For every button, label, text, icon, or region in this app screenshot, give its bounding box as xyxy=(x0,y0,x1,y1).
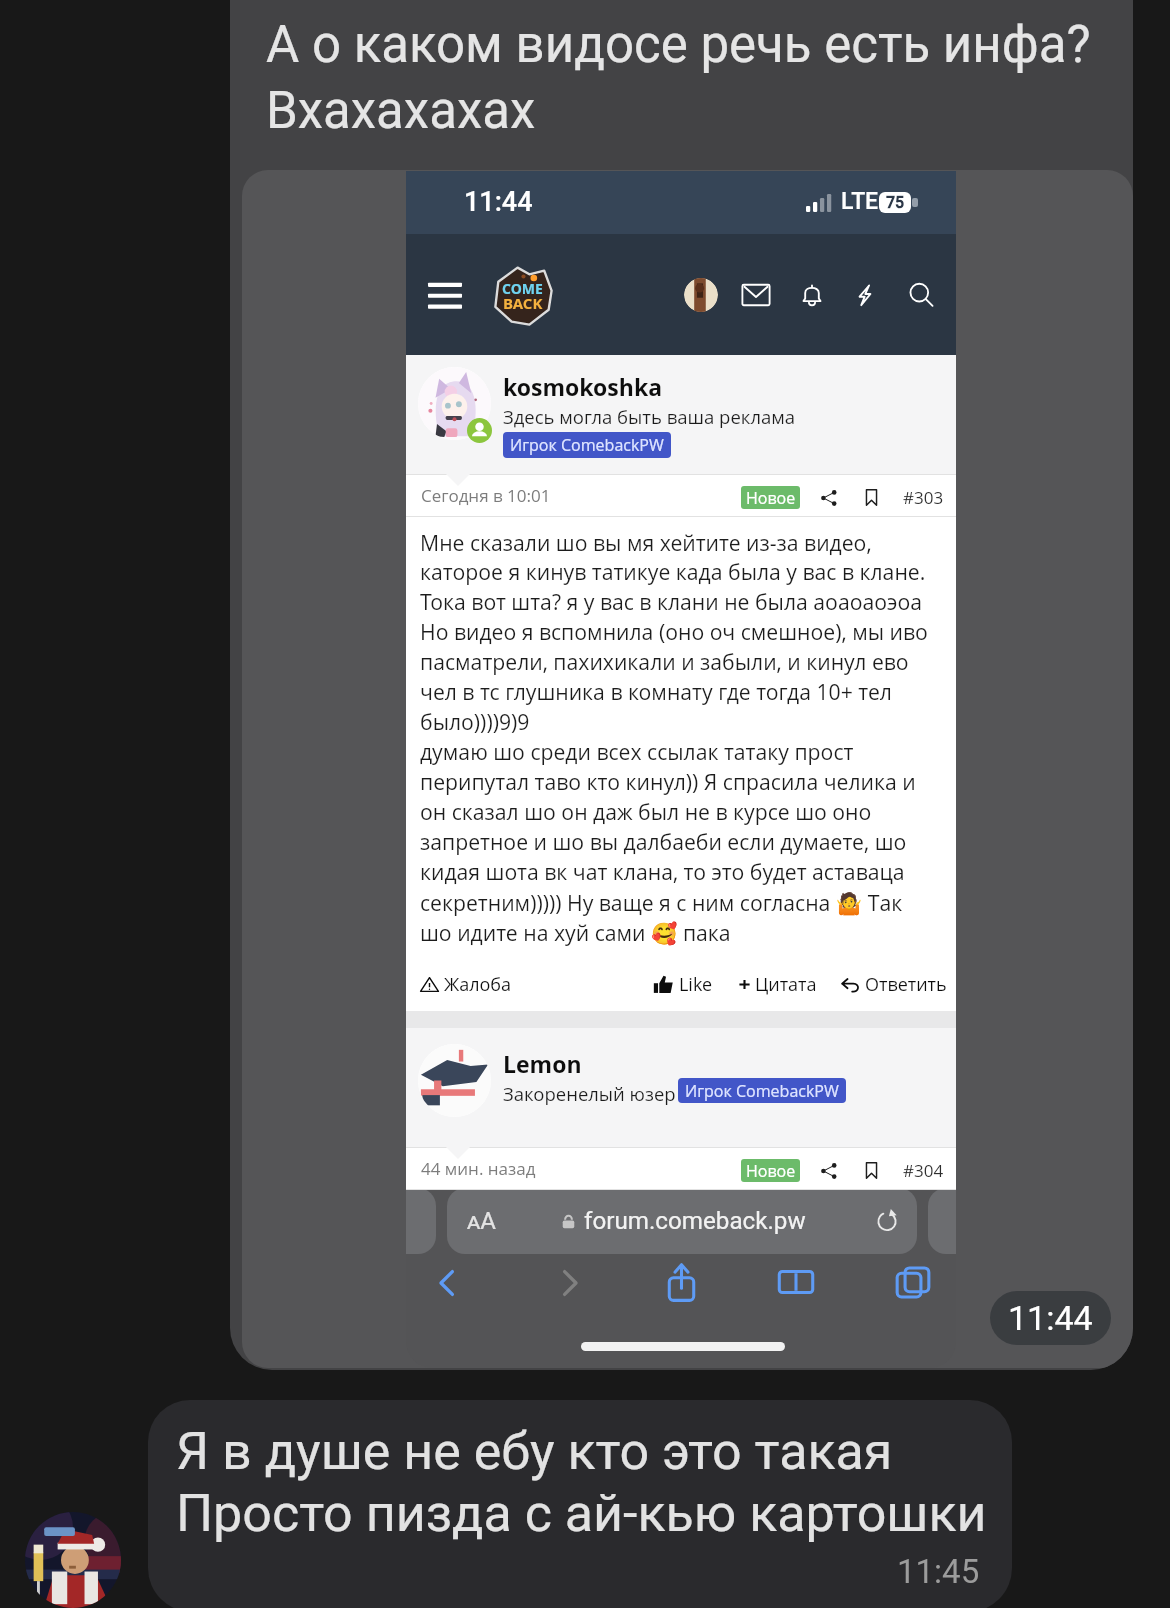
staticText: Цитата xyxy=(755,972,817,997)
staticText: Я в душе не ебу кто это такая Просто пиз… xyxy=(176,1421,987,1544)
staticText: LTE xyxy=(841,188,879,215)
staticText: #303 xyxy=(903,486,944,509)
staticText: Сегодня в 10:01 xyxy=(421,484,551,507)
button[interactable]: Жалоба xyxy=(420,972,512,997)
button[interactable]: Игрок ComebackPW xyxy=(503,432,671,458)
button[interactable]: Search xyxy=(904,278,938,312)
button[interactable]: Messages xyxy=(739,278,773,312)
staticText: 11:44 xyxy=(464,186,533,218)
other: Reload xyxy=(875,1209,899,1233)
button[interactable]: Новое xyxy=(741,1159,800,1182)
staticText: BACK xyxy=(503,293,543,313)
button[interactable]: Новое xyxy=(741,486,800,509)
staticText: Здесь могла быть ваша реклама xyxy=(503,404,796,429)
staticText: #304 xyxy=(903,1159,944,1182)
button[interactable]: А о каком видосе речь есть инфа? Вхахаха… xyxy=(230,0,1133,1370)
button[interactable]: Like xyxy=(653,972,713,997)
staticText: Жалоба xyxy=(444,972,512,997)
button[interactable]: Я в душе не ебу кто это такая Просто пиз… xyxy=(148,1400,1012,1608)
staticText: Игрок ComebackPW xyxy=(510,434,664,456)
button[interactable]: Forward xyxy=(547,1261,591,1305)
button[interactable]: Ответить xyxy=(840,972,947,997)
button[interactable]: Notifications xyxy=(795,278,829,312)
button[interactable]: Игрок ComebackPW xyxy=(678,1078,846,1103)
staticText: 75 xyxy=(886,193,905,212)
button[interactable]: Activity xyxy=(848,278,882,312)
staticText: 11:44 xyxy=(1008,1298,1093,1338)
staticText: forum.comeback.pw xyxy=(584,1207,806,1235)
staticText: Мне сказали шо вы мя хейтите из-за видео… xyxy=(420,528,928,947)
button[interactable]: Share xyxy=(658,1259,705,1306)
button[interactable]: Share xyxy=(819,1161,839,1181)
staticText: А о каком видосе речь есть инфа? Вхахаха… xyxy=(266,15,1091,141)
button[interactable]: Bookmarks xyxy=(774,1260,818,1304)
staticText: ᴀA xyxy=(467,1207,496,1235)
staticText: 44 мин. назад xyxy=(421,1157,536,1180)
staticText: Lemon xyxy=(503,1048,582,1079)
button[interactable]: COME xyxy=(485,258,559,332)
button[interactable]: Tabs xyxy=(891,1260,935,1304)
button[interactable]: Share xyxy=(819,488,839,508)
button[interactable] xyxy=(684,278,718,312)
button[interactable]: Back xyxy=(426,1261,470,1305)
staticText: Закоренелый юзер xyxy=(503,1081,676,1106)
button[interactable]: ᴀA xyxy=(447,1188,917,1254)
button[interactable]: Bookmark xyxy=(861,1160,882,1181)
staticText: Игрок ComebackPW xyxy=(685,1080,839,1102)
staticText: kosmokoshka xyxy=(503,371,663,402)
button[interactable]: Lemon xyxy=(406,1028,956,1147)
staticText: Ответить xyxy=(865,972,947,997)
button[interactable]: kosmokoshka xyxy=(406,355,956,474)
staticText: Новое xyxy=(746,1160,796,1182)
button[interactable]: Bookmark xyxy=(861,487,882,508)
staticText: Like xyxy=(679,972,713,997)
staticText: 11:45 xyxy=(897,1552,980,1591)
button[interactable]: Menu xyxy=(428,282,462,308)
staticText: COME xyxy=(502,279,543,298)
button[interactable]: Цитата xyxy=(737,972,817,997)
staticText: Новое xyxy=(746,487,796,509)
